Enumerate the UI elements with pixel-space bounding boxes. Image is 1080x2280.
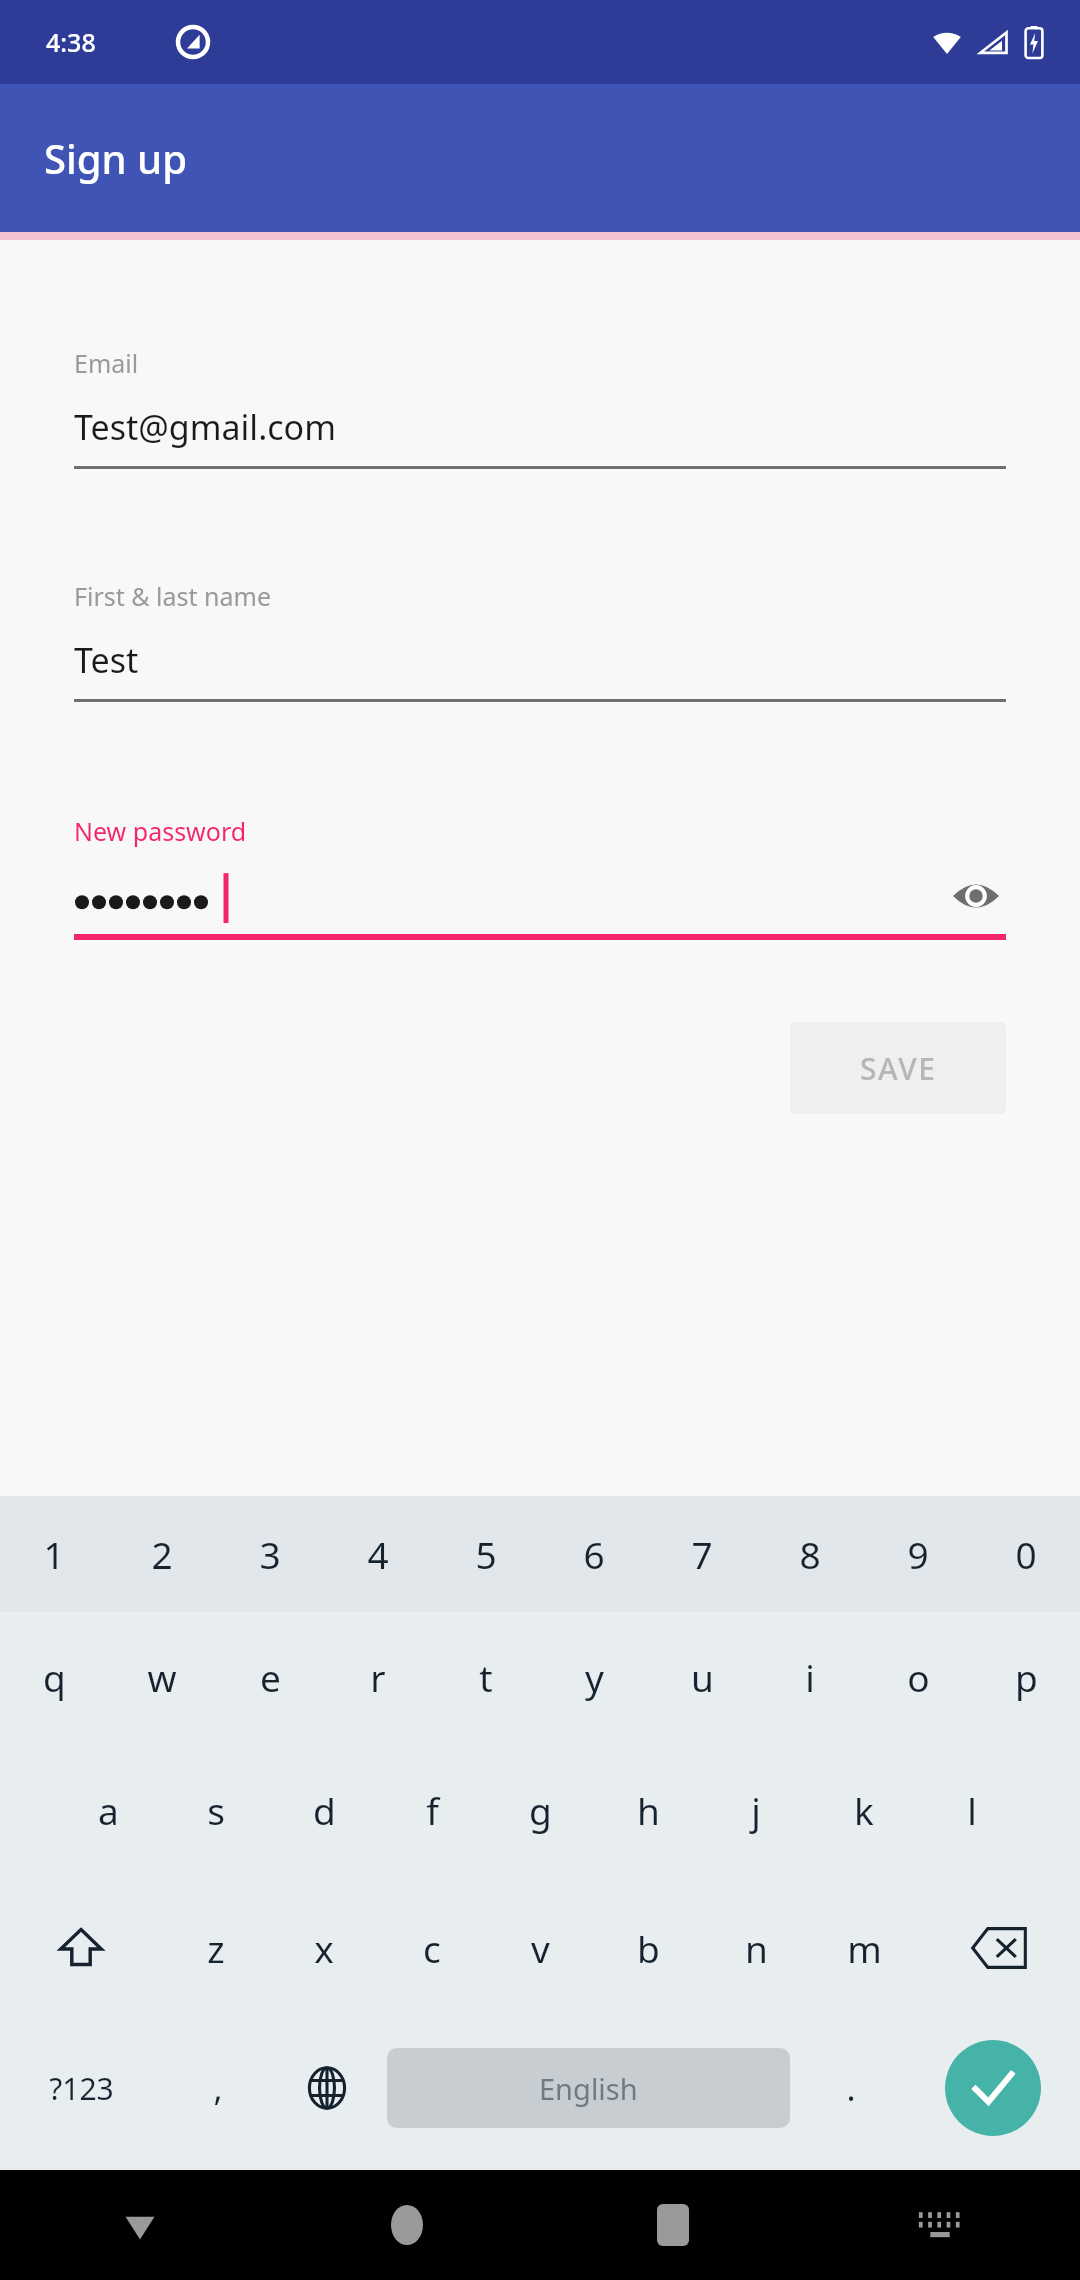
staticText: First & last name: [74, 579, 271, 613]
button[interactable]: r: [324, 1612, 432, 1742]
button[interactable]: x: [270, 1878, 378, 2018]
button[interactable]: 5: [432, 1496, 540, 1612]
staticText: c: [423, 1923, 441, 1973]
button[interactable]: English: [387, 2048, 790, 2128]
staticText: e: [260, 1652, 281, 1702]
staticText: 5: [475, 1529, 497, 1579]
button[interactable]: Recents: [633, 2185, 713, 2265]
staticText: Test@gmail.com: [74, 404, 336, 450]
button[interactable]: 2: [108, 1496, 216, 1612]
staticText: ?123: [49, 2068, 114, 2109]
staticText: 6: [583, 1529, 605, 1579]
staticText: 3: [259, 1529, 281, 1579]
staticText: j: [751, 1785, 761, 1835]
staticText: v: [531, 1923, 550, 1973]
staticText: r: [370, 1652, 386, 1702]
button[interactable]: n: [702, 1878, 810, 2018]
button[interactable]: Back: [100, 2185, 180, 2265]
staticText: n: [745, 1923, 768, 1973]
button[interactable]: SAVE: [790, 1022, 1006, 1114]
staticText: 0: [1015, 1529, 1037, 1579]
staticText: 4: [367, 1529, 389, 1579]
button[interactable]: Shift: [0, 1878, 162, 2018]
button[interactable]: m: [810, 1878, 918, 2018]
button[interactable]: o: [864, 1612, 972, 1742]
staticText: .: [846, 2065, 856, 2111]
staticText: w: [147, 1652, 177, 1702]
staticText: 2: [151, 1529, 173, 1579]
button[interactable]: 4: [324, 1496, 432, 1612]
button[interactable]: e: [216, 1612, 324, 1742]
staticText: 4:38: [46, 25, 96, 59]
staticText: t: [479, 1652, 493, 1702]
button[interactable]: 9: [864, 1496, 972, 1612]
button[interactable]: Switch keyboard: [900, 2185, 980, 2265]
staticText: u: [691, 1652, 714, 1702]
button[interactable]: a: [54, 1742, 162, 1878]
button[interactable]: 3: [216, 1496, 324, 1612]
button[interactable]: t: [432, 1612, 540, 1742]
staticText: z: [207, 1923, 225, 1973]
button[interactable]: Backspace: [918, 1878, 1080, 2018]
button[interactable]: b: [594, 1878, 702, 2018]
button[interactable]: Change language: [272, 2018, 381, 2158]
staticText: y: [585, 1652, 604, 1702]
button[interactable]: s: [162, 1742, 270, 1878]
button[interactable]: j: [702, 1742, 810, 1878]
button[interactable]: c: [378, 1878, 486, 2018]
button[interactable]: ,: [163, 2018, 272, 2158]
button[interactable]: 8: [756, 1496, 864, 1612]
staticText: k: [854, 1785, 874, 1835]
button[interactable]: 7: [648, 1496, 756, 1612]
button[interactable]: f: [378, 1742, 486, 1878]
button[interactable]: 1: [0, 1496, 108, 1612]
staticText: b: [637, 1923, 660, 1973]
button[interactable]: d: [270, 1742, 378, 1878]
button[interactable]: .: [796, 2018, 905, 2158]
staticText: d: [313, 1785, 336, 1835]
staticText: 9: [907, 1529, 929, 1579]
staticText: ,: [213, 2065, 223, 2111]
button[interactable]: g: [486, 1742, 594, 1878]
staticText: s: [207, 1785, 225, 1835]
button[interactable]: Home: [367, 2185, 447, 2265]
button[interactable]: k: [810, 1742, 918, 1878]
staticText: i: [805, 1652, 815, 1702]
button[interactable]: 0: [972, 1496, 1080, 1612]
button[interactable]: h: [594, 1742, 702, 1878]
staticText: l: [967, 1785, 977, 1835]
staticText: m: [847, 1923, 882, 1973]
button[interactable]: First & last name: [74, 579, 1006, 702]
staticText: 1: [43, 1529, 65, 1579]
button[interactable]: y: [540, 1612, 648, 1742]
button[interactable]: z: [162, 1878, 270, 2018]
staticText: 8: [799, 1529, 821, 1579]
staticText: English: [539, 2069, 638, 2108]
staticText: a: [98, 1785, 119, 1835]
staticText: New password: [74, 814, 247, 848]
staticText: Email: [74, 346, 139, 380]
staticText: p: [1015, 1652, 1038, 1702]
button[interactable]: i: [756, 1612, 864, 1742]
button[interactable]: New password: [74, 814, 1006, 940]
staticText: Test: [74, 637, 139, 683]
staticText: x: [314, 1923, 334, 1973]
button[interactable]: q: [0, 1612, 108, 1742]
staticText: o: [907, 1652, 930, 1702]
button[interactable]: l: [918, 1742, 1026, 1878]
button[interactable]: Show password: [946, 870, 1006, 922]
button[interactable]: ?123: [0, 2018, 163, 2158]
staticText: h: [637, 1785, 660, 1835]
staticText: Sign up: [44, 131, 187, 185]
staticText: SAVE: [860, 1048, 937, 1089]
button[interactable]: Done: [945, 2040, 1041, 2136]
button[interactable]: u: [648, 1612, 756, 1742]
button[interactable]: w: [108, 1612, 216, 1742]
button[interactable]: 6: [540, 1496, 648, 1612]
staticText: f: [426, 1785, 439, 1835]
button[interactable]: p: [972, 1612, 1080, 1742]
button[interactable]: Email: [74, 346, 1006, 469]
staticText: q: [43, 1652, 66, 1702]
staticText: g: [529, 1785, 552, 1835]
button[interactable]: v: [486, 1878, 594, 2018]
